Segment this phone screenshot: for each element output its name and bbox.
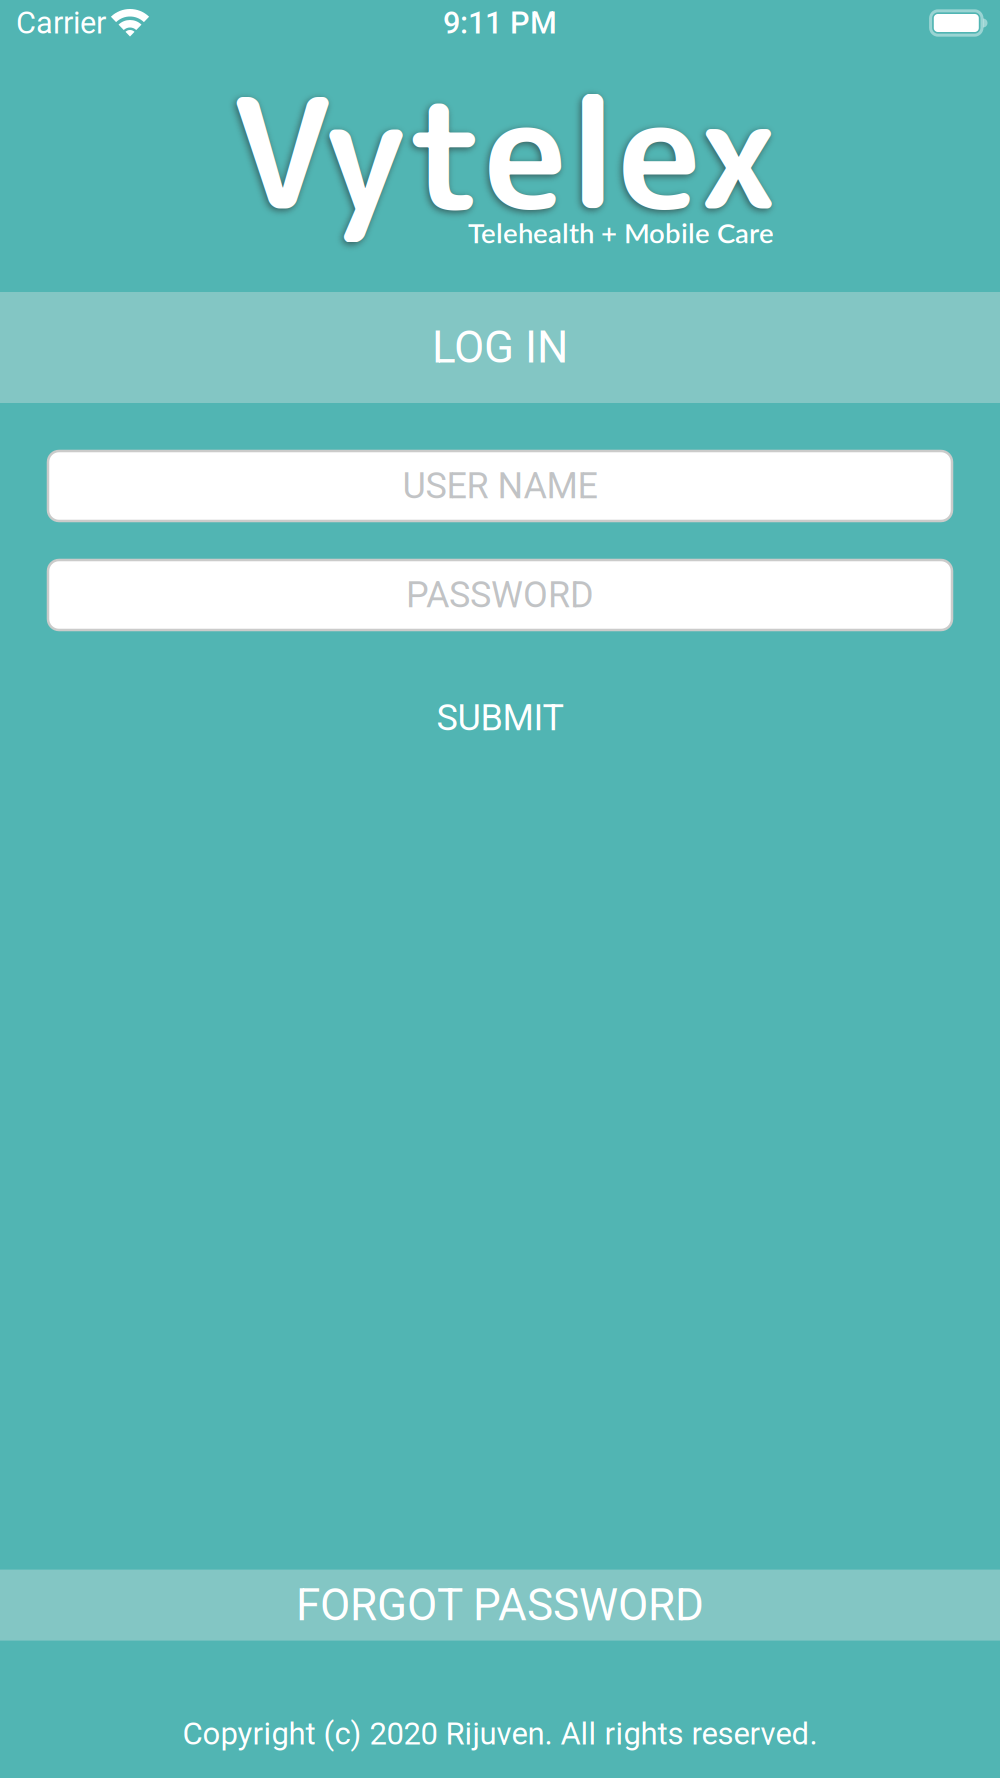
staticText: SUBMIT bbox=[436, 697, 563, 739]
staticText: Copyright (c) 2020 Rijuven. All rights r… bbox=[182, 1716, 817, 1752]
button[interactable]: FORGOT PASSWORD bbox=[0, 1570, 1000, 1641]
button[interactable]: PASSWORD bbox=[48, 560, 952, 630]
staticText: LOG IN bbox=[432, 322, 568, 373]
staticText: USER NAME bbox=[402, 465, 597, 507]
staticText: Carrier bbox=[16, 5, 106, 41]
button[interactable]: SUBMIT bbox=[0, 698, 1000, 738]
staticText: Telehealth + Mobile Care bbox=[468, 216, 774, 249]
staticText: FORGOT PASSWORD bbox=[296, 1579, 704, 1631]
button[interactable]: USER NAME bbox=[48, 451, 952, 521]
staticText: 9:11 PM bbox=[443, 5, 557, 41]
staticText: PASSWORD bbox=[406, 574, 594, 616]
button[interactable]: LOG IN bbox=[0, 292, 1000, 403]
staticText: Vytelex bbox=[232, 45, 777, 257]
